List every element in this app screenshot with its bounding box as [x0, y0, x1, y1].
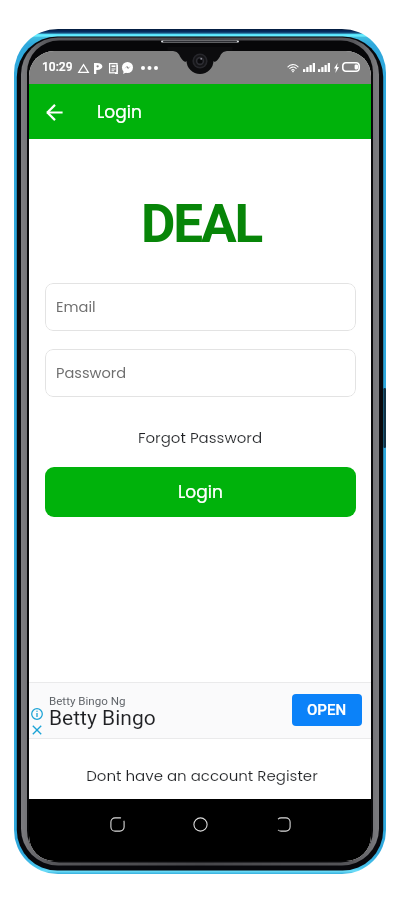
staticText: Login	[97, 100, 142, 124]
button[interactable]: Recent apps	[96, 803, 138, 845]
button[interactable]: OPEN	[292, 694, 362, 726]
staticText: Login	[178, 480, 223, 504]
button[interactable]: Password	[45, 349, 356, 397]
button[interactable]: Email	[45, 283, 356, 331]
staticText: Email	[56, 297, 96, 317]
staticText: Betty Bingo	[49, 706, 156, 731]
button[interactable]: Login	[45, 467, 356, 517]
button[interactable]: Forgot Password	[29, 427, 371, 448]
button[interactable]: Back	[262, 803, 304, 845]
staticText: Betty Bingo Ng	[49, 694, 126, 708]
button[interactable]: Dont have an account Register	[31, 765, 371, 786]
button[interactable]: Back	[31, 89, 77, 135]
staticText: 10:29	[42, 60, 73, 74]
staticText: OPEN	[307, 701, 347, 719]
staticText: Password	[56, 363, 127, 383]
staticText: DEAL	[30, 193, 371, 255]
button[interactable]: Home	[179, 803, 221, 845]
